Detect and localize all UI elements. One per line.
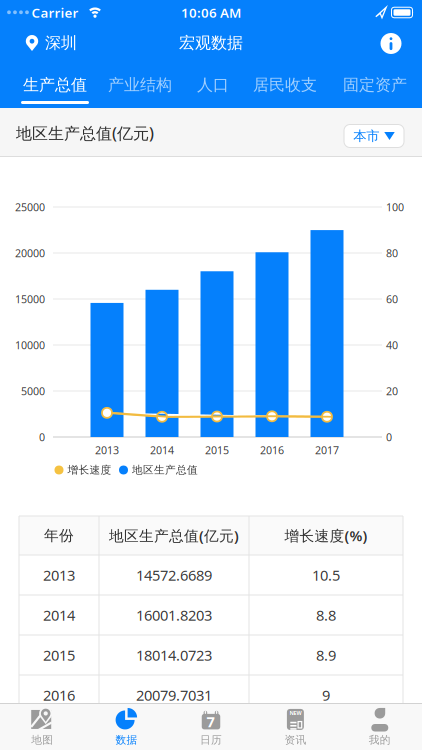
- staticText: 18014.0723: [136, 645, 212, 665]
- staticText: 产业结构: [108, 75, 172, 95]
- staticText: 80: [386, 246, 398, 260]
- button[interactable]: 产业结构: [100, 65, 180, 105]
- staticText: 地图: [31, 733, 53, 746]
- button[interactable]: 地图: [0, 704, 84, 750]
- staticText: 20000: [15, 246, 45, 260]
- staticText: 2016: [260, 443, 284, 457]
- staticText: 2016: [43, 685, 75, 705]
- button[interactable]: 我的: [338, 704, 422, 750]
- staticText: 人口: [197, 75, 229, 95]
- staticText: 0: [39, 430, 45, 444]
- staticText: 年份: [44, 526, 74, 544]
- staticText: 2013: [95, 443, 119, 457]
- staticText: 25000: [15, 200, 45, 214]
- staticText: 居民收支: [253, 75, 317, 95]
- staticText: NEW: [289, 709, 301, 716]
- staticText: 2013: [43, 565, 75, 585]
- staticText: 8.8: [316, 605, 336, 625]
- staticText: 地区生产总值: [132, 463, 198, 476]
- staticText: 深圳: [45, 33, 77, 53]
- button[interactable]: 人口: [190, 65, 236, 105]
- staticText: 40: [386, 338, 398, 352]
- button[interactable]: 生产总值: [15, 65, 95, 105]
- button[interactable]: 信息: [376, 28, 406, 58]
- staticText: 20: [386, 384, 398, 398]
- staticText: 2014: [150, 443, 174, 457]
- staticText: 7: [206, 712, 214, 731]
- staticText: 5000: [21, 384, 45, 398]
- staticText: 固定资产: [343, 75, 407, 95]
- staticText: 增长速度(%): [284, 526, 367, 545]
- staticText: 2015: [205, 443, 229, 457]
- staticText: 10:06 AM: [181, 4, 241, 21]
- staticText: 日历: [200, 733, 222, 746]
- staticText: 20079.7031: [136, 685, 212, 705]
- staticText: 宏观数据: [179, 33, 243, 53]
- button[interactable]: 数据: [85, 704, 169, 750]
- staticText: 10000: [15, 338, 45, 352]
- button[interactable]: NEW: [253, 704, 337, 750]
- staticText: 14572.6689: [136, 565, 212, 585]
- staticText: 本市: [353, 128, 379, 144]
- staticText: 我的: [369, 733, 391, 746]
- staticText: 2014: [43, 605, 75, 625]
- staticText: 15000: [15, 292, 45, 306]
- staticText: 数据: [116, 733, 138, 746]
- staticText: 10.5: [312, 565, 340, 585]
- button[interactable]: 7: [169, 704, 253, 750]
- button[interactable]: 固定资产: [335, 65, 415, 105]
- staticText: 地区生产总值(亿元): [109, 526, 239, 545]
- staticText: 8.9: [316, 645, 336, 665]
- staticText: 9: [322, 685, 330, 705]
- staticText: 增长速度: [67, 463, 111, 476]
- button[interactable]: 选择城市: [19, 25, 83, 61]
- staticText: 生产总值: [23, 75, 87, 95]
- staticText: Carrier: [31, 4, 78, 21]
- staticText: 16001.8203: [136, 605, 212, 625]
- staticText: 0: [386, 430, 392, 444]
- staticText: 100: [386, 200, 404, 214]
- staticText: 60: [386, 292, 398, 306]
- staticText: 2017: [315, 443, 339, 457]
- button[interactable]: 本市: [344, 124, 404, 147]
- staticText: 2015: [43, 645, 75, 665]
- staticText: 地区生产总值(亿元): [16, 122, 154, 144]
- staticText: 资讯: [284, 733, 306, 746]
- button[interactable]: 居民收支: [245, 65, 325, 105]
